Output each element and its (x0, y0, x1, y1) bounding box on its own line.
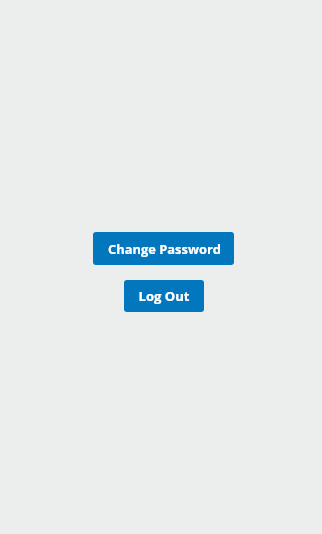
button[interactable]: Log Out (124, 280, 204, 312)
staticText: Log Out (138, 287, 190, 305)
staticText: Change Password (108, 240, 221, 258)
button[interactable]: Change Password (93, 232, 234, 265)
